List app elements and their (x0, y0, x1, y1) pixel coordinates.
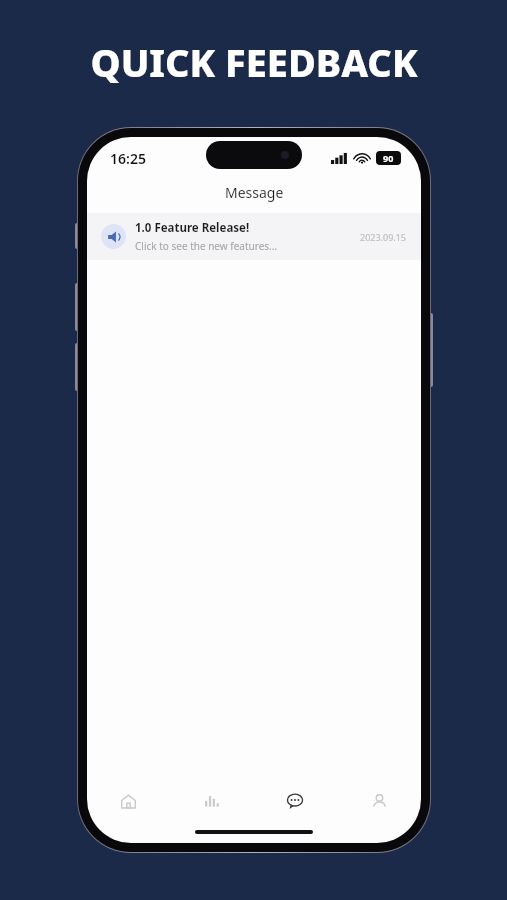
staticText: 90 (383, 152, 394, 164)
staticText: Click to see the new features... (135, 239, 278, 253)
staticText: 2023.09.15 (360, 231, 407, 243)
staticText: 1.0 Feature Release! (135, 220, 250, 236)
button[interactable]: Home (87, 781, 170, 821)
staticText: 16:25 (110, 149, 146, 168)
button[interactable]: Messages (253, 781, 337, 821)
button[interactable]: Profile (337, 781, 421, 821)
button[interactable]: 1.0 Feature Release! (87, 213, 421, 260)
staticText: Message (225, 183, 284, 202)
staticText: QUICK FEEDBACK (90, 36, 418, 88)
button[interactable]: Statistics (170, 781, 253, 821)
